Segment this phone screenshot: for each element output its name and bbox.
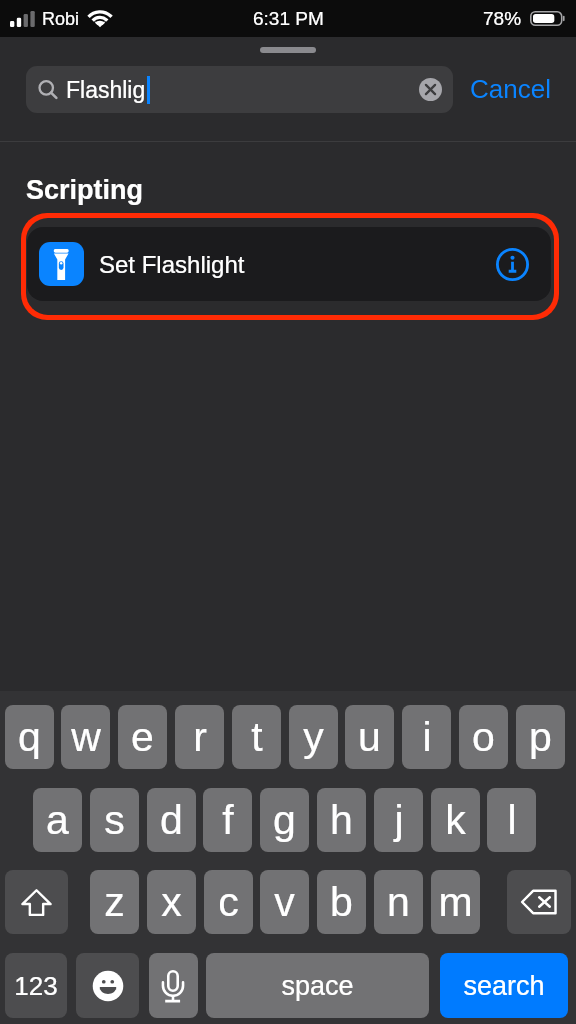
staticText: s — [104, 797, 125, 843]
button[interactable]: Shift — [5, 870, 68, 934]
button[interactable]: a — [33, 788, 82, 852]
staticText: 6:31 PM — [253, 8, 324, 29]
button[interactable]: l — [487, 788, 536, 852]
staticText: r — [193, 714, 207, 760]
button[interactable]: k — [431, 788, 480, 852]
button[interactable]: b — [317, 870, 366, 934]
staticText: a — [46, 797, 69, 843]
button[interactable]: o — [459, 705, 508, 769]
button[interactable]: d — [147, 788, 196, 852]
staticText: x — [161, 879, 182, 925]
button[interactable]: g — [260, 788, 309, 852]
button[interactable]: m — [431, 870, 480, 934]
staticText: 78% — [483, 8, 522, 29]
staticText: q — [18, 714, 41, 760]
button[interactable]: Set Flashlight — [27, 227, 551, 301]
button[interactable]: Emoji — [76, 953, 139, 1018]
button[interactable]: 123 — [5, 953, 67, 1018]
button[interactable]: w — [61, 705, 110, 769]
button[interactable]: search — [440, 953, 568, 1018]
button[interactable]: v — [260, 870, 309, 934]
staticText: space — [281, 971, 354, 1001]
button[interactable]: q — [5, 705, 54, 769]
staticText: z — [104, 879, 125, 925]
staticText: u — [358, 714, 381, 760]
button[interactable]: Backspace — [507, 870, 571, 934]
staticText: c — [218, 879, 239, 925]
staticText: o — [472, 714, 495, 760]
button[interactable]: space — [206, 953, 429, 1018]
staticText: d — [160, 797, 183, 843]
staticText: p — [529, 714, 552, 760]
button[interactable]: p — [516, 705, 565, 769]
staticText: i — [422, 714, 432, 760]
button[interactable]: Info — [496, 248, 529, 281]
button[interactable]: s — [90, 788, 139, 852]
staticText: y — [303, 714, 324, 760]
button[interactable]: t — [232, 705, 281, 769]
button[interactable]: i — [402, 705, 451, 769]
staticText: l — [507, 797, 517, 843]
staticText: w — [71, 714, 101, 760]
staticText: g — [273, 797, 296, 843]
staticText: Robi — [42, 9, 80, 29]
button[interactable]: r — [175, 705, 224, 769]
button[interactable]: c — [204, 870, 253, 934]
button[interactable]: Cancel — [470, 65, 576, 112]
staticText: Cancel — [470, 74, 551, 103]
button[interactable]: z — [90, 870, 139, 934]
button[interactable]: u — [345, 705, 394, 769]
staticText: Scripting — [26, 175, 144, 205]
staticText: t — [251, 714, 263, 760]
button[interactable]: f — [203, 788, 252, 852]
staticText: n — [387, 879, 410, 925]
button[interactable]: e — [118, 705, 167, 769]
staticText: Set Flashlight — [99, 251, 245, 278]
button[interactable]: Clear text — [419, 78, 442, 101]
staticText: b — [330, 879, 353, 925]
button[interactable]: h — [317, 788, 366, 852]
staticText: h — [330, 797, 353, 843]
staticText: f — [222, 797, 234, 843]
staticText: m — [438, 879, 473, 925]
staticText: j — [394, 797, 404, 843]
staticText: Flashlig — [66, 77, 146, 103]
button[interactable]: j — [374, 788, 423, 852]
button[interactable]: n — [374, 870, 423, 934]
button[interactable]: x — [147, 870, 196, 934]
staticText: search — [463, 971, 545, 1001]
staticText: e — [131, 714, 154, 760]
button[interactable]: Dictation — [149, 953, 198, 1018]
staticText: k — [445, 797, 466, 843]
button[interactable]: y — [289, 705, 338, 769]
staticText: v — [274, 879, 295, 925]
staticText: 123 — [14, 971, 58, 1000]
button[interactable]: Flashlig — [26, 66, 453, 113]
